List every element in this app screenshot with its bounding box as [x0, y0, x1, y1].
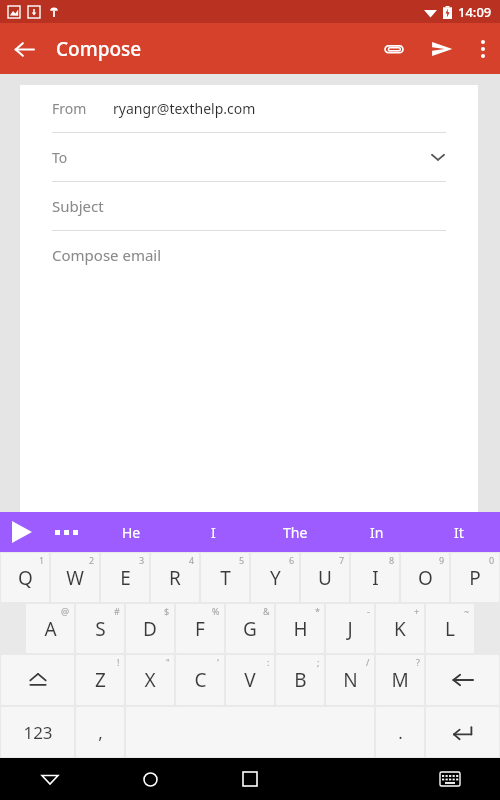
button[interactable]: N — [326, 655, 374, 705]
button[interactable]: Back — [0, 25, 48, 73]
button[interactable]: I — [172, 512, 254, 552]
button[interactable]: Y — [251, 553, 299, 602]
button[interactable]: M — [376, 655, 424, 705]
staticText: Z — [95, 667, 106, 693]
button[interactable]: Send — [418, 25, 466, 73]
staticText: ! — [117, 656, 120, 668]
button[interactable]: T — [201, 553, 249, 602]
staticText: 6 — [289, 554, 295, 566]
staticText: K — [394, 616, 406, 642]
staticText: & — [263, 605, 270, 617]
button[interactable]: B — [276, 655, 324, 705]
button[interactable]: A — [26, 604, 74, 653]
staticText: O — [418, 565, 433, 591]
button[interactable] — [426, 655, 499, 705]
button[interactable]: S — [76, 604, 124, 653]
staticText: A — [44, 616, 57, 642]
button[interactable]: To — [52, 133, 446, 181]
staticText: The — [283, 523, 308, 542]
button[interactable]: L — [426, 604, 474, 653]
button[interactable]: Back — [0, 758, 100, 800]
button[interactable]: Z — [76, 655, 124, 705]
staticText: H — [293, 616, 308, 642]
button[interactable]: It — [418, 512, 500, 552]
button[interactable]: I — [351, 553, 399, 602]
button[interactable]: The — [254, 512, 336, 552]
button[interactable]: 123 — [1, 707, 74, 757]
button[interactable]: Home — [100, 758, 200, 800]
staticText: D — [143, 616, 157, 642]
button[interactable]: More options — [466, 25, 500, 73]
staticText: + — [414, 605, 420, 617]
button[interactable]: R — [151, 553, 199, 602]
staticText: ? — [416, 656, 420, 668]
staticText: 4 — [189, 554, 195, 566]
button[interactable]: Subject — [52, 182, 446, 230]
staticText: 1 — [39, 554, 45, 566]
staticText: , — [98, 721, 103, 744]
button[interactable]: In — [336, 512, 418, 552]
staticText: Subject — [52, 196, 104, 216]
button[interactable]: He — [90, 512, 172, 552]
staticText: G — [243, 616, 257, 642]
button[interactable]: V — [226, 655, 274, 705]
button[interactable]: X — [126, 655, 174, 705]
staticText: In — [370, 523, 384, 542]
staticText: V — [244, 667, 256, 693]
staticText: $ — [164, 605, 170, 617]
staticText: I — [372, 565, 379, 591]
staticText: S — [95, 616, 106, 642]
button[interactable]: From — [52, 85, 446, 132]
staticText: 9 — [439, 554, 445, 566]
button[interactable]: G — [226, 604, 274, 653]
button[interactable]: Attach — [370, 25, 418, 73]
staticText: " — [166, 656, 170, 668]
staticText: 123 — [23, 721, 53, 744]
staticText: R — [169, 565, 181, 591]
staticText: E — [120, 565, 131, 591]
button[interactable] — [1, 655, 74, 705]
button[interactable]: Compose email — [52, 231, 446, 279]
button[interactable]: K — [376, 604, 424, 653]
staticText: 2 — [89, 554, 95, 566]
staticText: ryangr@texthelp.com — [113, 99, 256, 118]
staticText: L — [445, 616, 455, 642]
button[interactable]: W — [51, 553, 99, 602]
button[interactable] — [426, 707, 499, 757]
button[interactable]: J — [326, 604, 374, 653]
button[interactable]: Q — [1, 553, 49, 602]
staticText: 14:09 — [458, 3, 492, 21]
button[interactable]: Play — [0, 512, 44, 552]
staticText: W — [66, 565, 84, 591]
staticText: J — [347, 616, 353, 642]
button[interactable]: O — [401, 553, 449, 602]
staticText: Compose — [56, 36, 142, 62]
button[interactable]: More predictions — [44, 512, 88, 552]
staticText: It — [454, 523, 464, 542]
button[interactable]: C — [176, 655, 224, 705]
staticText: : — [267, 656, 270, 668]
button[interactable]: H — [276, 604, 324, 653]
staticText: N — [343, 667, 358, 693]
button[interactable]: E — [101, 553, 149, 602]
button[interactable]: D — [126, 604, 174, 653]
staticText: - — [367, 605, 370, 617]
staticText: ' — [217, 656, 220, 668]
staticText: 8 — [389, 554, 395, 566]
button[interactable]: , — [76, 707, 124, 757]
button[interactable]: U — [301, 553, 349, 602]
staticText: F — [195, 616, 205, 642]
staticText: 3 — [139, 554, 145, 566]
button[interactable]: Switch keyboard — [400, 758, 500, 800]
staticText: Y — [270, 565, 281, 591]
staticText: 5 — [239, 554, 245, 566]
staticText: % — [212, 605, 220, 617]
button[interactable]: Recent apps — [200, 758, 300, 800]
staticText: X — [144, 667, 156, 693]
button[interactable]: . — [376, 707, 424, 757]
button[interactable]: P — [451, 553, 499, 602]
staticText: Q — [18, 565, 33, 591]
button[interactable]: F — [176, 604, 224, 653]
staticText: / — [366, 656, 370, 668]
